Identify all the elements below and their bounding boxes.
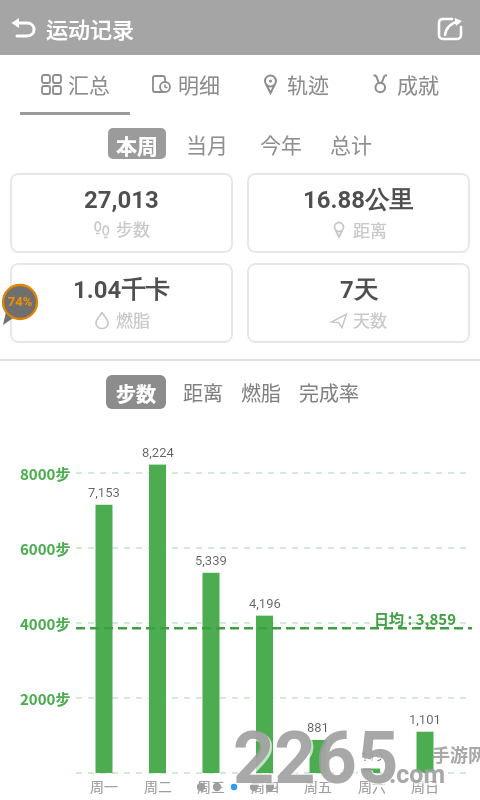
staticText: .com <box>391 762 448 791</box>
staticText: 5,339 <box>195 553 227 568</box>
staticText: 距离 <box>353 217 387 242</box>
staticText: 周日 <box>411 776 439 796</box>
staticText: 2000步 <box>20 688 71 710</box>
staticText: 燃脂 <box>116 307 150 332</box>
staticText: 74% <box>6 294 34 309</box>
button[interactable]: 明细 <box>151 69 220 99</box>
button[interactable]: 成就 <box>370 69 439 99</box>
staticText: 步数 <box>116 379 156 405</box>
staticText: 本周 <box>116 130 158 157</box>
staticText: 4,196 <box>249 596 281 611</box>
staticText: 手游网 <box>434 743 480 769</box>
button[interactable]: 轨迹 <box>260 69 329 99</box>
button[interactable]: 16.88公里 <box>247 173 470 253</box>
staticText: 轨迹 <box>287 69 329 99</box>
staticText: 手游网 <box>432 741 480 767</box>
staticText: 7,153 <box>88 485 120 500</box>
staticText: 周六 <box>358 776 386 796</box>
staticText: 周三 <box>197 776 225 796</box>
staticText: 天数 <box>353 307 387 332</box>
staticText: 汇总 <box>68 69 110 99</box>
staticText: 周一 <box>90 776 118 796</box>
staticText: 2265 <box>235 718 401 800</box>
staticText: 明细 <box>178 69 220 99</box>
button[interactable]: 完成率 <box>299 378 359 407</box>
staticText: 1.04千卡 <box>73 275 170 305</box>
staticText: 1,101 <box>409 712 441 727</box>
staticText: 16.88公里 <box>303 185 414 215</box>
staticText: 119 <box>361 749 383 764</box>
button[interactable]: 7天 <box>247 263 470 343</box>
staticText: 2265 <box>233 716 399 800</box>
staticText: 8000步 <box>20 463 71 485</box>
button[interactable]: 本周 <box>108 128 166 159</box>
button[interactable] <box>420 0 480 55</box>
button[interactable]: 当月 <box>186 129 228 159</box>
button[interactable] <box>0 0 46 55</box>
staticText: 7天 <box>340 275 378 305</box>
button[interactable]: 27,013 <box>10 173 233 253</box>
staticText: .com <box>389 760 446 789</box>
button[interactable]: 总计 <box>330 129 372 159</box>
button[interactable]: 距离 <box>183 378 223 407</box>
staticText: 8,224 <box>142 445 174 460</box>
staticText: 周四 <box>251 776 279 796</box>
staticText: 881 <box>307 720 329 735</box>
staticText: 4000步 <box>20 613 71 635</box>
staticText: 日均 : 3,859 <box>286 608 456 630</box>
button[interactable]: 今年 <box>260 129 302 159</box>
staticText: 27,013 <box>84 186 159 214</box>
staticText: 周二 <box>144 776 172 796</box>
button[interactable]: 步数 <box>106 375 166 409</box>
staticText: 步数 <box>116 216 150 241</box>
button[interactable]: 燃脂 <box>241 378 281 407</box>
button[interactable]: 汇总 <box>41 69 110 99</box>
button[interactable]: 1.04千卡 <box>10 263 233 343</box>
staticText: 运动记录 <box>46 12 135 44</box>
staticText: 周五 <box>304 776 332 796</box>
staticText: 6000步 <box>20 538 71 560</box>
staticText: 成就 <box>397 69 439 99</box>
